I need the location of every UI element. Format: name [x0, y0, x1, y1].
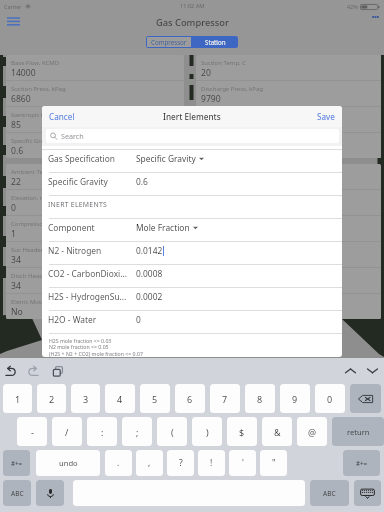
button[interactable]: More options — [372, 12, 384, 18]
button[interactable]: Mole Wt — [196, 133, 381, 158]
button[interactable]: H2S - HydrogenSu... — [42, 288, 342, 310]
button[interactable]: Fuel, GJ/d — [196, 268, 381, 293]
staticText: Mech Eff, % — [201, 111, 234, 119]
button[interactable]: Suction Press, kPag — [6, 81, 184, 106]
button[interactable]: Menu — [0, 12, 20, 26]
button[interactable]: ; — [122, 417, 152, 446]
button[interactable]: / — [52, 417, 82, 446]
button[interactable]: Ambient Temp, C — [6, 164, 184, 189]
staticText: Elevation, m — [11, 194, 46, 202]
button[interactable]: N2 - Nitrogen — [42, 242, 342, 264]
button[interactable]: Station — [192, 36, 238, 48]
button[interactable]: 8 — [245, 384, 275, 413]
button[interactable]: 2 — [37, 384, 66, 413]
button[interactable]: #+= — [343, 450, 380, 476]
staticText: 34 — [11, 280, 21, 292]
staticText: ABC — [323, 489, 336, 498]
button[interactable]: Unit Type — [196, 164, 381, 189]
button[interactable]: Save — [310, 107, 342, 126]
button[interactable]: Eletric Motor — [6, 294, 184, 319]
button[interactable]: Previous field — [344, 366, 357, 376]
button[interactable]: Discharge Press, kPag — [196, 81, 381, 106]
button[interactable]: Search — [46, 129, 339, 143]
staticText: 98 — [201, 119, 211, 131]
button[interactable]: Paste — [53, 366, 63, 377]
button[interactable]: undo — [36, 450, 100, 476]
button[interactable]: 0 — [315, 384, 345, 413]
staticText: Component — [48, 222, 136, 233]
button[interactable]: Gas Specification — [42, 150, 342, 172]
button[interactable]: - — [17, 417, 47, 446]
button[interactable]: Compressor — [147, 37, 191, 47]
button[interactable]: 5 — [140, 384, 170, 413]
staticText: Base Flow, KCMD — [11, 59, 60, 67]
button[interactable]: : — [87, 417, 117, 446]
staticText: $ — [239, 426, 245, 438]
button[interactable]: ! — [198, 450, 225, 476]
staticText: 22 — [11, 176, 21, 188]
button[interactable]: Redo — [27, 366, 39, 377]
button[interactable]: ABC — [3, 480, 31, 506]
button[interactable]: Suction Temp, C — [196, 55, 381, 80]
button[interactable]: Disch Header Loss — [6, 268, 184, 293]
button[interactable]: 6 — [175, 384, 205, 413]
button[interactable]: ) — [192, 417, 222, 446]
button[interactable]: Undo — [5, 366, 17, 377]
button[interactable]: ' — [229, 450, 256, 476]
button[interactable]: Component — [42, 219, 342, 241]
button[interactable]: Hide keyboard — [354, 480, 381, 506]
button[interactable]: H2O - Water — [42, 311, 342, 333]
button[interactable]: @ — [297, 417, 327, 446]
button[interactable]: 4 — [105, 384, 135, 413]
button[interactable]: , — [136, 450, 163, 476]
button[interactable]: Isentropic Eff, % — [6, 107, 184, 132]
button[interactable]: & — [262, 417, 292, 446]
staticText: Discharge Press, kPag — [201, 85, 263, 93]
button[interactable]: Stages — [196, 216, 381, 241]
button[interactable]: Elevation, m — [6, 190, 184, 215]
button[interactable]: Driver — [196, 190, 381, 215]
staticText: 9 — [292, 393, 298, 405]
button[interactable]: Suc Header Loss — [6, 242, 184, 267]
button[interactable]: Backspace — [350, 384, 381, 413]
staticText: 3 — [83, 393, 89, 405]
staticText: 1 — [11, 228, 16, 240]
button[interactable]: " — [260, 450, 287, 476]
button[interactable]: ? — [167, 450, 194, 476]
button[interactable]: Dictate — [36, 480, 64, 506]
button[interactable]: 9 — [280, 384, 310, 413]
staticText: 34 — [11, 254, 21, 266]
staticText: Disch Header Loss — [11, 272, 63, 280]
button[interactable]: $ — [227, 417, 257, 446]
button[interactable]: ABC — [310, 480, 349, 506]
button[interactable]: Base Flow, KCMD — [6, 55, 184, 80]
button[interactable]: 3 — [71, 384, 100, 413]
button[interactable]: Next field — [366, 366, 379, 376]
button[interactable]: Cancel — [42, 107, 82, 126]
button[interactable]: Mech Eff, % — [196, 107, 381, 132]
button[interactable]: #+= — [3, 450, 30, 476]
staticText: undo — [59, 458, 78, 468]
button[interactable]: Power, kW — [196, 294, 381, 319]
staticText: Suction Press, kPag — [11, 85, 66, 93]
staticText: 20 — [201, 67, 211, 79]
button[interactable]: . — [105, 450, 132, 476]
button[interactable]: Specific Gravity — [42, 173, 342, 195]
staticText: #+= — [11, 459, 23, 467]
staticText: 120 — [201, 280, 216, 292]
button[interactable]: ( — [157, 417, 187, 446]
button[interactable]: 7 — [210, 384, 240, 413]
button[interactable]: Compressors — [6, 216, 184, 241]
button[interactable]: CO2 - CarbonDioxi... — [42, 265, 342, 287]
staticText: 4 — [117, 393, 123, 405]
button[interactable]: 1 — [3, 384, 32, 413]
staticText: 6860 — [11, 93, 31, 105]
staticText: N2 - Nitrogen — [48, 245, 136, 256]
button[interactable]: Cooler Type — [196, 242, 381, 267]
button[interactable]: return — [332, 417, 384, 446]
button[interactable]: Specific Gravity — [6, 133, 184, 158]
